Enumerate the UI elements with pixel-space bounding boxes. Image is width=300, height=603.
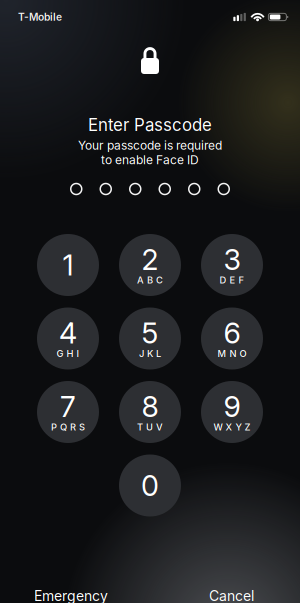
staticText: 9 xyxy=(223,389,240,424)
staticText: 5 xyxy=(141,316,158,350)
staticText: 2 xyxy=(141,242,158,277)
button[interactable]: 7 xyxy=(37,381,99,443)
button[interactable]: Emergency xyxy=(34,587,108,603)
button[interactable]: 1 xyxy=(37,234,99,296)
staticText: T-Mobile xyxy=(18,11,62,23)
button[interactable]: 0 xyxy=(119,454,181,516)
staticText: W X Y Z xyxy=(213,421,250,433)
staticText: Cancel xyxy=(209,587,254,603)
staticText: 7 xyxy=(60,389,76,424)
button[interactable]: 4 xyxy=(37,307,99,369)
staticText: G H I xyxy=(56,348,79,359)
staticText: Enter Passcode xyxy=(88,115,212,135)
button[interactable]: 8 xyxy=(119,381,181,443)
staticText: 0 xyxy=(141,468,159,503)
staticText: 1 xyxy=(62,248,73,282)
staticText: T U V xyxy=(137,421,163,433)
staticText: 3 xyxy=(223,242,240,277)
staticText: 4 xyxy=(59,316,77,350)
staticText: M N O xyxy=(217,348,246,359)
button[interactable]: 3 xyxy=(201,234,263,296)
staticText: P Q R S xyxy=(51,421,85,433)
staticText: 6 xyxy=(223,316,240,350)
staticText: to enable Face ID xyxy=(101,153,199,167)
button[interactable]: Cancel xyxy=(209,587,254,603)
staticText: Your passcode is required xyxy=(78,138,222,153)
staticText: J K L xyxy=(139,348,161,359)
staticText: Emergency xyxy=(34,587,108,603)
button[interactable]: 2 xyxy=(119,234,181,296)
button[interactable]: 5 xyxy=(119,307,181,369)
staticText: 8 xyxy=(141,389,158,424)
staticText: A B C xyxy=(137,274,163,286)
staticText: D E F xyxy=(219,274,244,286)
button[interactable]: 6 xyxy=(201,307,263,369)
button[interactable]: 9 xyxy=(201,381,263,443)
